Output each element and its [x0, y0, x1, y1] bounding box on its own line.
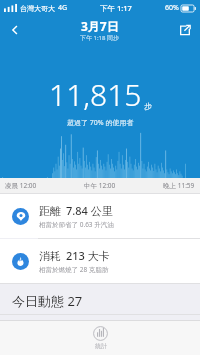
- staticText: 超過了 70% 的使用者: [67, 118, 134, 128]
- staticText: 60%: [165, 3, 179, 13]
- staticText: 中午 12:00: [84, 181, 116, 190]
- staticText: 步: [144, 101, 152, 111]
- button[interactable]: 統計: [83, 323, 118, 353]
- staticText: 消耗: [39, 249, 61, 263]
- staticText: 距離: [39, 204, 61, 218]
- staticText: 台灣大哥大: [20, 4, 55, 13]
- staticText: 晚上 11:59: [163, 181, 195, 190]
- staticText: 213 大卡: [66, 248, 110, 263]
- staticText: 3月7日: [81, 18, 119, 34]
- staticText: 統計: [95, 342, 107, 350]
- button[interactable]: 消耗: [0, 239, 200, 283]
- staticText: 下午 1:17: [100, 3, 132, 13]
- button[interactable]: 距離: [0, 194, 200, 238]
- staticText: 7.84 公里: [66, 203, 113, 218]
- staticText: 凌晨 12:00: [5, 181, 37, 190]
- staticText: 11,815: [49, 74, 142, 115]
- staticText: 相當於燃燒了 28 克脂肪: [39, 265, 109, 274]
- button[interactable]: Share: [170, 16, 200, 44]
- staticText: 下午 1:18 同步: [80, 34, 120, 42]
- button[interactable]: Back: [0, 16, 30, 44]
- staticText: 相當於節省了 0.63 升汽油: [39, 220, 114, 229]
- staticText: 4G: [58, 3, 68, 13]
- staticText: 今日動態 27: [12, 292, 83, 310]
